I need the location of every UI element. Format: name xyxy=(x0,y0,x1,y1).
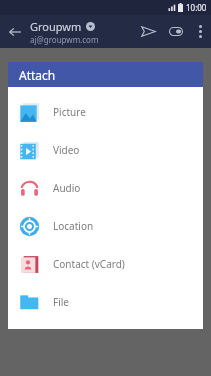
button[interactable]: File xyxy=(8,283,203,321)
staticText: Location xyxy=(53,219,94,233)
button[interactable]: Attach xyxy=(163,15,189,48)
button[interactable]: More options xyxy=(189,15,211,48)
button[interactable]: Send xyxy=(133,15,163,48)
button[interactable]: Audio xyxy=(8,169,203,207)
staticText: Groupwm xyxy=(30,19,82,34)
staticText: Audio xyxy=(53,181,81,195)
staticText: aj@groupwm.com xyxy=(30,34,99,45)
button[interactable]: Contact (vCard) xyxy=(8,245,203,283)
staticText: Attach xyxy=(19,67,56,83)
staticText: Picture xyxy=(53,105,86,119)
staticText: File xyxy=(53,295,69,309)
button[interactable]: Video xyxy=(8,131,203,169)
button[interactable]: Location xyxy=(8,207,203,245)
button[interactable]: Picture xyxy=(8,93,203,131)
button[interactable]: Back xyxy=(0,15,30,48)
staticText: Contact (vCard) xyxy=(53,257,125,271)
staticText: Video xyxy=(53,143,80,157)
button[interactable]: Expand recipients xyxy=(86,22,95,31)
staticText: 10:00 xyxy=(186,2,207,13)
